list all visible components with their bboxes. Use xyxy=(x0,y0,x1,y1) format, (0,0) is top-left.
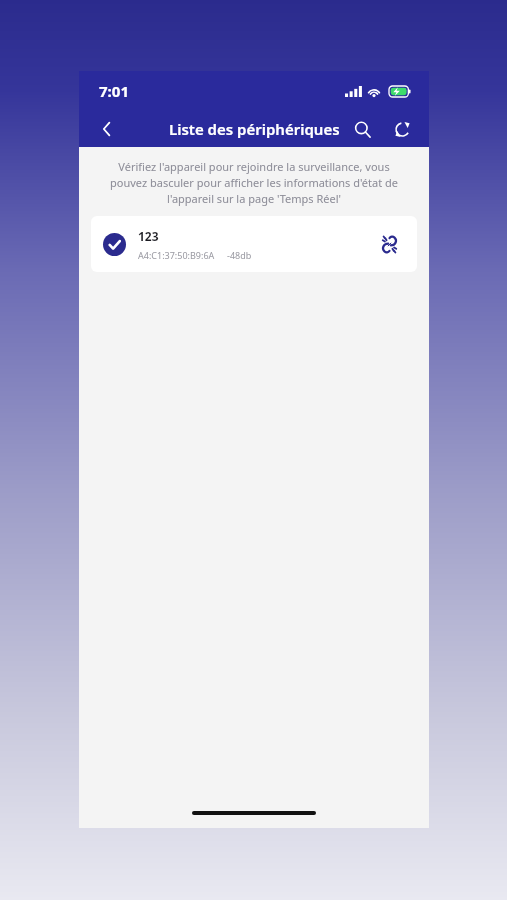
staticText: 7:01 xyxy=(99,81,129,101)
staticText: Liste des périphériques xyxy=(169,119,340,139)
button[interactable]: Disconnect device xyxy=(375,230,403,258)
staticText: -48db xyxy=(227,249,252,261)
button[interactable]: Search xyxy=(347,114,377,144)
staticText: Vérifiez l'appareil pour rejoindre la su… xyxy=(101,159,407,206)
staticText: 123 xyxy=(138,228,159,244)
staticText: A4:C1:37:50:B9:6A xyxy=(138,249,215,261)
button[interactable]: 123 xyxy=(91,216,417,272)
button[interactable]: Back xyxy=(91,113,123,145)
button[interactable]: Refresh xyxy=(387,114,417,144)
